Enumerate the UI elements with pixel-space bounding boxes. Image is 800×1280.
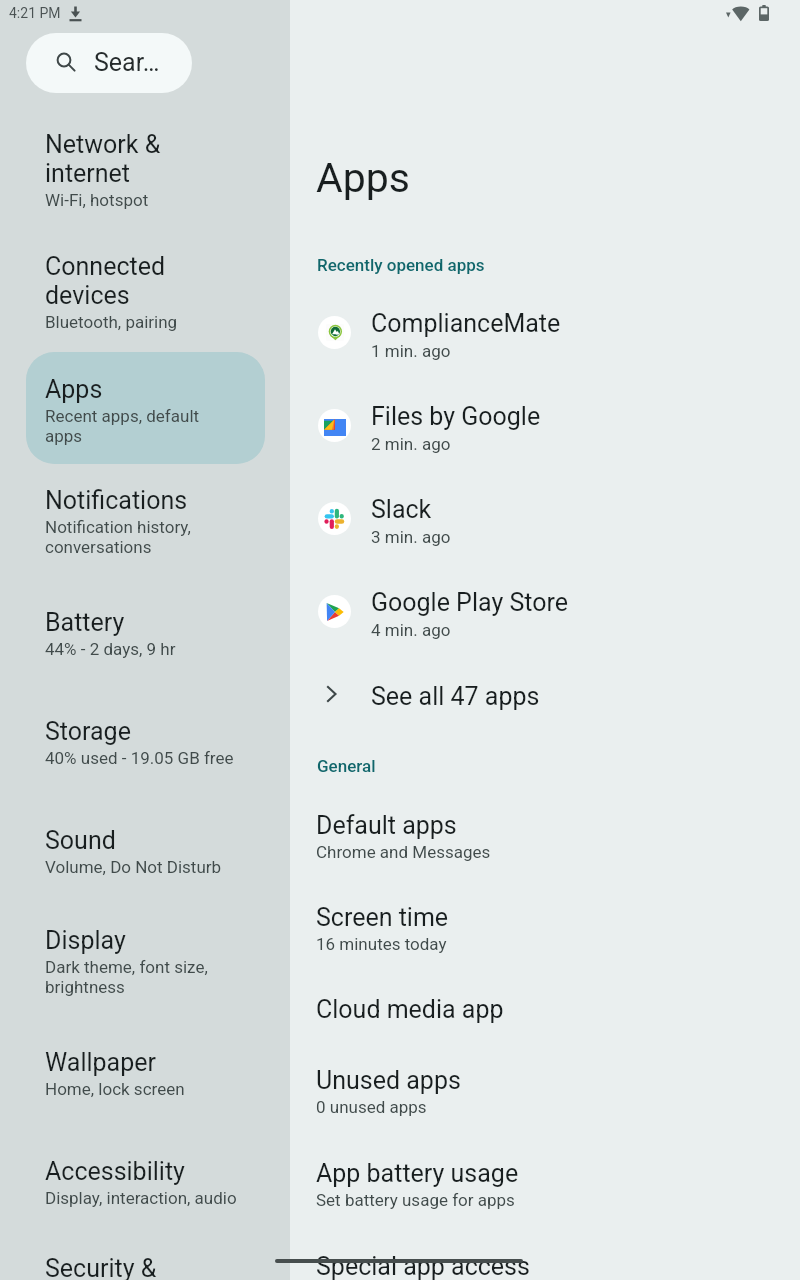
button[interactable]: App battery usage	[290, 1137, 800, 1221]
staticText: Wallpaper	[45, 1048, 156, 1077]
button[interactable]: Slack	[290, 482, 800, 554]
staticText: Storage	[45, 717, 131, 746]
button[interactable]	[26, 905, 265, 1021]
button[interactable]: Default apps	[290, 789, 800, 873]
staticText: Recently opened apps	[317, 255, 485, 275]
staticText: Notifications	[45, 486, 188, 515]
staticText: Network & internet	[45, 130, 161, 188]
button[interactable]	[26, 465, 265, 581]
staticText: 0 unused apps	[316, 1097, 427, 1117]
staticText: See all 47 apps	[371, 682, 540, 711]
button[interactable]	[26, 696, 265, 791]
staticText: General	[317, 756, 376, 776]
button[interactable]	[26, 1136, 265, 1231]
staticText: Apps	[45, 375, 103, 404]
staticText: 2 min. ago	[371, 434, 451, 454]
staticText: Files by Google	[371, 402, 541, 431]
staticText: Connected devices	[45, 252, 166, 310]
button[interactable]: Cloud media app	[290, 973, 800, 1037]
staticText: Display, interaction, audio	[45, 1188, 237, 1208]
button[interactable]	[26, 1027, 265, 1122]
button[interactable]: ComplianceMate	[290, 296, 800, 368]
button[interactable]	[26, 805, 265, 900]
button[interactable]: Screen time	[290, 881, 800, 965]
staticText: Home, lock screen	[45, 1079, 185, 1099]
staticText: App battery usage	[316, 1159, 519, 1188]
staticText: Battery	[45, 608, 125, 637]
staticText: Default apps	[316, 811, 457, 840]
staticText: 40% used - 19.05 GB free	[45, 748, 234, 768]
staticText: Special app access	[316, 1252, 530, 1280]
staticText: Display	[45, 926, 126, 955]
staticText: Unused apps	[316, 1066, 461, 1095]
staticText: Recent apps, default apps	[45, 406, 200, 446]
staticText: Apps	[316, 154, 410, 202]
staticText: 1 min. ago	[371, 341, 451, 361]
button[interactable]: See all 47 apps	[290, 667, 800, 723]
staticText: Wi-Fi, hotspot	[45, 190, 149, 210]
button[interactable]: Unused apps	[290, 1044, 800, 1128]
staticText: Security & privacy	[45, 1254, 157, 1280]
staticText: Accessibility	[45, 1157, 185, 1186]
staticText: 16 minutes today	[316, 934, 447, 954]
staticText: 3 min. ago	[371, 527, 451, 547]
button[interactable]	[26, 109, 265, 233]
staticText: Notification history, conversations	[45, 517, 191, 557]
staticText: Google Play Store	[371, 588, 568, 617]
staticText: Set battery usage for apps	[316, 1190, 515, 1210]
button[interactable]: Files by Google	[290, 389, 800, 461]
button[interactable]: Google Play Store	[290, 575, 800, 647]
button[interactable]	[26, 587, 265, 682]
staticText: Sear…	[94, 48, 160, 77]
staticText: 4 min. ago	[371, 620, 451, 640]
button[interactable]: Special app access	[290, 1230, 800, 1280]
staticText: ComplianceMate	[371, 309, 561, 338]
staticText: Bluetooth, pairing	[45, 312, 178, 332]
button[interactable]	[26, 352, 265, 464]
button[interactable]	[26, 231, 265, 355]
staticText: Volume, Do Not Disturb	[45, 857, 222, 877]
staticText: Screen time	[316, 903, 449, 932]
other: Home	[275, 1259, 523, 1263]
button[interactable]: Sear…	[26, 33, 192, 93]
staticText: 44% - 2 days, 9 hr	[45, 639, 176, 659]
staticText: Sound	[45, 826, 116, 855]
staticText: Dark theme, font size, brightness	[45, 957, 208, 997]
staticText: Slack	[371, 495, 432, 524]
staticText: Cloud media app	[316, 995, 504, 1024]
staticText: 4:21 PM	[9, 5, 61, 21]
button[interactable]	[26, 1233, 265, 1280]
staticText: Chrome and Messages	[316, 842, 491, 862]
